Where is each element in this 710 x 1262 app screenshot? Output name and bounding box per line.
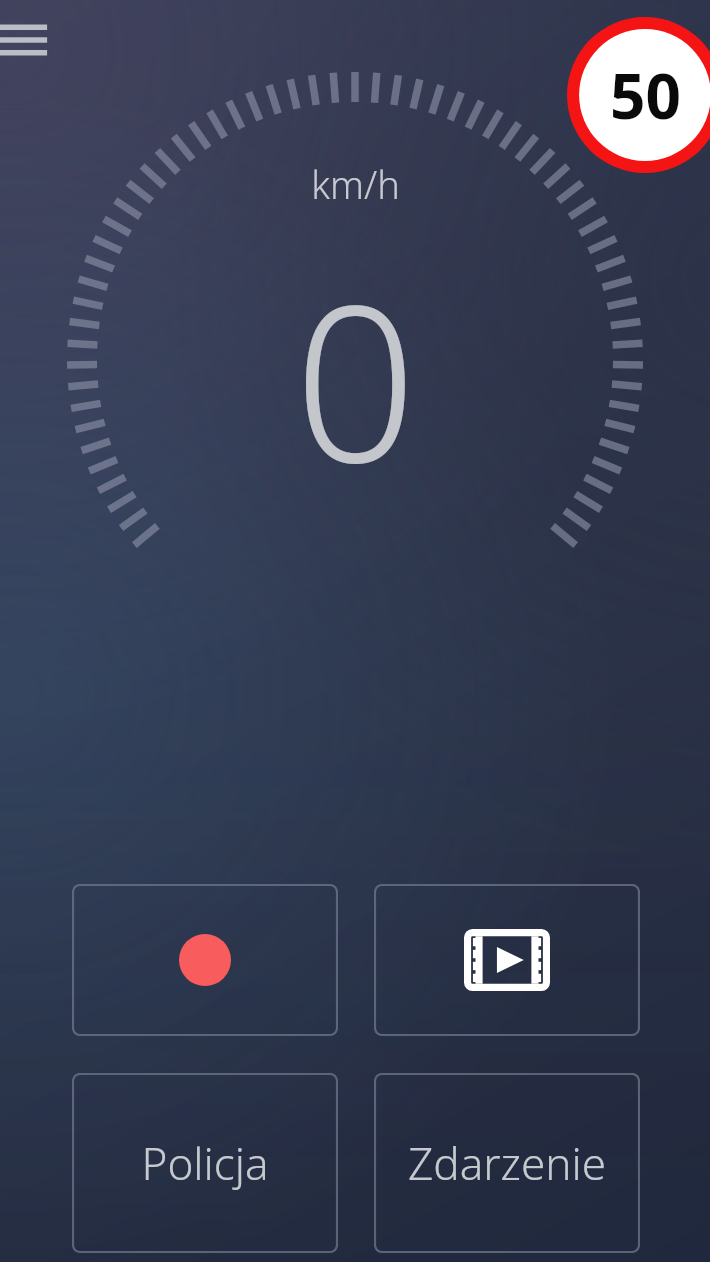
button[interactable]: Zdarzenie (374, 1073, 640, 1253)
staticText: km/h (311, 158, 400, 210)
button[interactable]: Videos (374, 884, 640, 1036)
button[interactable]: Menu (0, 8, 62, 72)
staticText: Policja (141, 1133, 269, 1193)
button[interactable]: Speed limit 50 (567, 17, 710, 173)
staticText: 0 (294, 232, 417, 525)
staticText: 50 (610, 53, 681, 137)
button[interactable]: Policja (72, 1073, 338, 1253)
staticText: Zdarzenie (408, 1133, 606, 1193)
button[interactable]: Record (72, 884, 338, 1036)
